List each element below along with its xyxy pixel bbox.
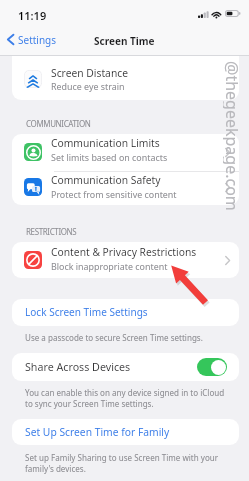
button[interactable]: Open — [221, 254, 233, 266]
staticText: RESTRICTIONS — [26, 226, 77, 237]
staticText: Content & Privacy Restrictions — [51, 245, 197, 259]
staticText: Share Across Devices — [25, 360, 131, 375]
staticText: Block inappropriate content — [51, 260, 168, 272]
staticText: Set Up Screen Time for Family — [25, 425, 170, 439]
staticText: Reduce eye strain — [51, 80, 125, 92]
staticText: Protect from sensitive content — [51, 188, 177, 200]
button[interactable]: Open — [221, 146, 233, 158]
staticText: Set limits based on contacts — [51, 151, 168, 163]
staticText: Communication Safety — [51, 173, 161, 187]
staticText: Use a passcode to secure Screen Time set… — [25, 332, 240, 343]
button[interactable]: Open — [221, 181, 233, 193]
staticText: Screen Distance — [51, 66, 129, 80]
staticText: @thegeekpage.com — [223, 61, 243, 211]
staticText: Lock Screen Time Settings — [25, 305, 148, 319]
staticText: You can enable this on any device signed… — [25, 387, 240, 409]
button[interactable]: Lock Screen Time Settings — [12, 299, 239, 326]
staticText: Set up Family Sharing to use Screen Time… — [25, 452, 240, 474]
button[interactable]: Share Across Devices — [197, 358, 227, 376]
staticText: 11:19 — [18, 8, 47, 23]
staticText: COMMUNICATION — [26, 118, 91, 129]
button[interactable]: Set Up Screen Time for Family — [12, 419, 239, 445]
button[interactable]: Settings — [7, 31, 57, 48]
staticText: Screen Time — [94, 34, 155, 48]
staticText: Settings — [18, 33, 57, 47]
staticText: Communication Limits — [51, 136, 160, 150]
